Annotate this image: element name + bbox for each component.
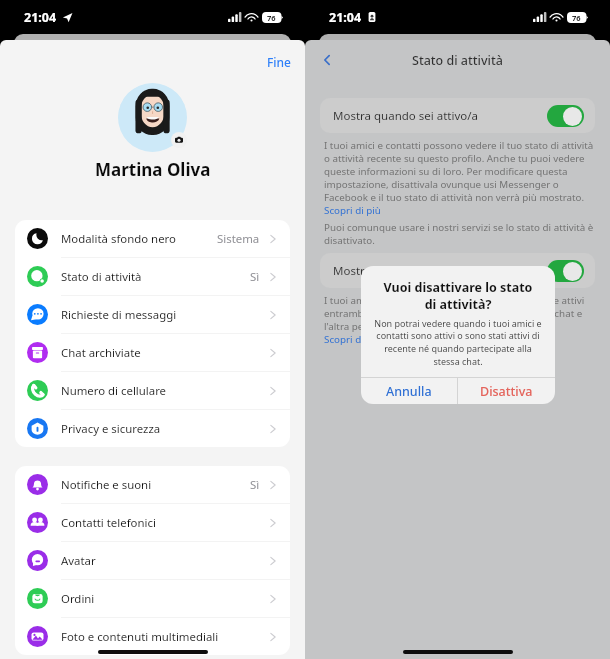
- button[interactable]: Scopri di più: [324, 204, 381, 217]
- staticText: Mostra quando sei attivo/a: [333, 108, 478, 124]
- staticText: Avatar: [61, 553, 96, 569]
- staticText: Stato di attività: [61, 269, 142, 285]
- staticText: Scopri di più: [324, 333, 381, 346]
- button[interactable]: Contatti telefonici: [15, 504, 290, 542]
- staticText: Chat archiviate: [61, 345, 141, 361]
- staticText: Sì: [250, 269, 260, 285]
- staticText: Foto e contenuti multimediali: [61, 629, 219, 645]
- staticText: Numero di cellulare: [61, 383, 167, 399]
- staticText: Ordini: [61, 591, 95, 607]
- button[interactable]: Numero di cellulare: [15, 372, 290, 410]
- staticText: Sistema: [217, 231, 260, 247]
- button[interactable]: Privacy e sicurezza: [15, 410, 290, 447]
- button[interactable]: Fine: [267, 54, 291, 70]
- staticText: Vuoi disattivare lo stato di attività?: [373, 279, 543, 312]
- staticText: 76: [572, 13, 581, 23]
- button[interactable]: Foto e contenuti multimediali: [15, 618, 290, 655]
- button[interactable]: Scopri di più: [324, 333, 381, 346]
- staticText: Annulla: [386, 383, 432, 400]
- staticText: Mostra: [333, 263, 372, 279]
- staticText: Contatti telefonici: [61, 515, 156, 531]
- button[interactable]: Back: [318, 51, 336, 69]
- staticText: Richieste di messaggi: [61, 307, 177, 323]
- button[interactable]: Annulla: [361, 378, 457, 404]
- staticText: Disattiva: [480, 383, 533, 400]
- button[interactable]: Avatar: [15, 542, 290, 580]
- button[interactable]: Richieste di messaggi: [15, 296, 290, 334]
- button[interactable]: Notifiche e suoni: [15, 466, 290, 504]
- staticText: Sì: [250, 477, 260, 493]
- staticText: Stato di attività: [412, 52, 503, 69]
- staticText: I tuoi amici e contatti possono vedere i…: [324, 139, 596, 204]
- button[interactable]: Change photo: [171, 132, 187, 148]
- staticText: Notifiche e suoni: [61, 477, 152, 493]
- button[interactable]: Chat archiviate: [15, 334, 290, 372]
- button[interactable]: Stato di attività: [15, 258, 290, 296]
- staticText: Non potrai vedere quando i tuoi amici e …: [362, 317, 554, 368]
- staticText: Martina Oliva: [95, 158, 211, 181]
- button[interactable]: Disattiva: [458, 378, 555, 404]
- staticText: 21:04: [24, 9, 57, 26]
- staticText: Modalità sfondo nero: [61, 231, 176, 247]
- staticText: Privacy e sicurezza: [61, 421, 161, 437]
- staticText: Fine: [267, 54, 291, 70]
- staticText: 21:04: [329, 9, 362, 26]
- button[interactable]: [547, 105, 584, 127]
- staticText: Scopri di più: [324, 204, 381, 217]
- staticText: I tuoi amici e contatti possono vedere q…: [324, 294, 596, 333]
- button[interactable]: [547, 260, 584, 282]
- staticText: Puoi comunque usare i nostri servizi se …: [324, 221, 596, 247]
- staticText: 76: [267, 13, 276, 23]
- button[interactable]: Modalità sfondo nero: [15, 220, 290, 258]
- button[interactable]: Ordini: [15, 580, 290, 618]
